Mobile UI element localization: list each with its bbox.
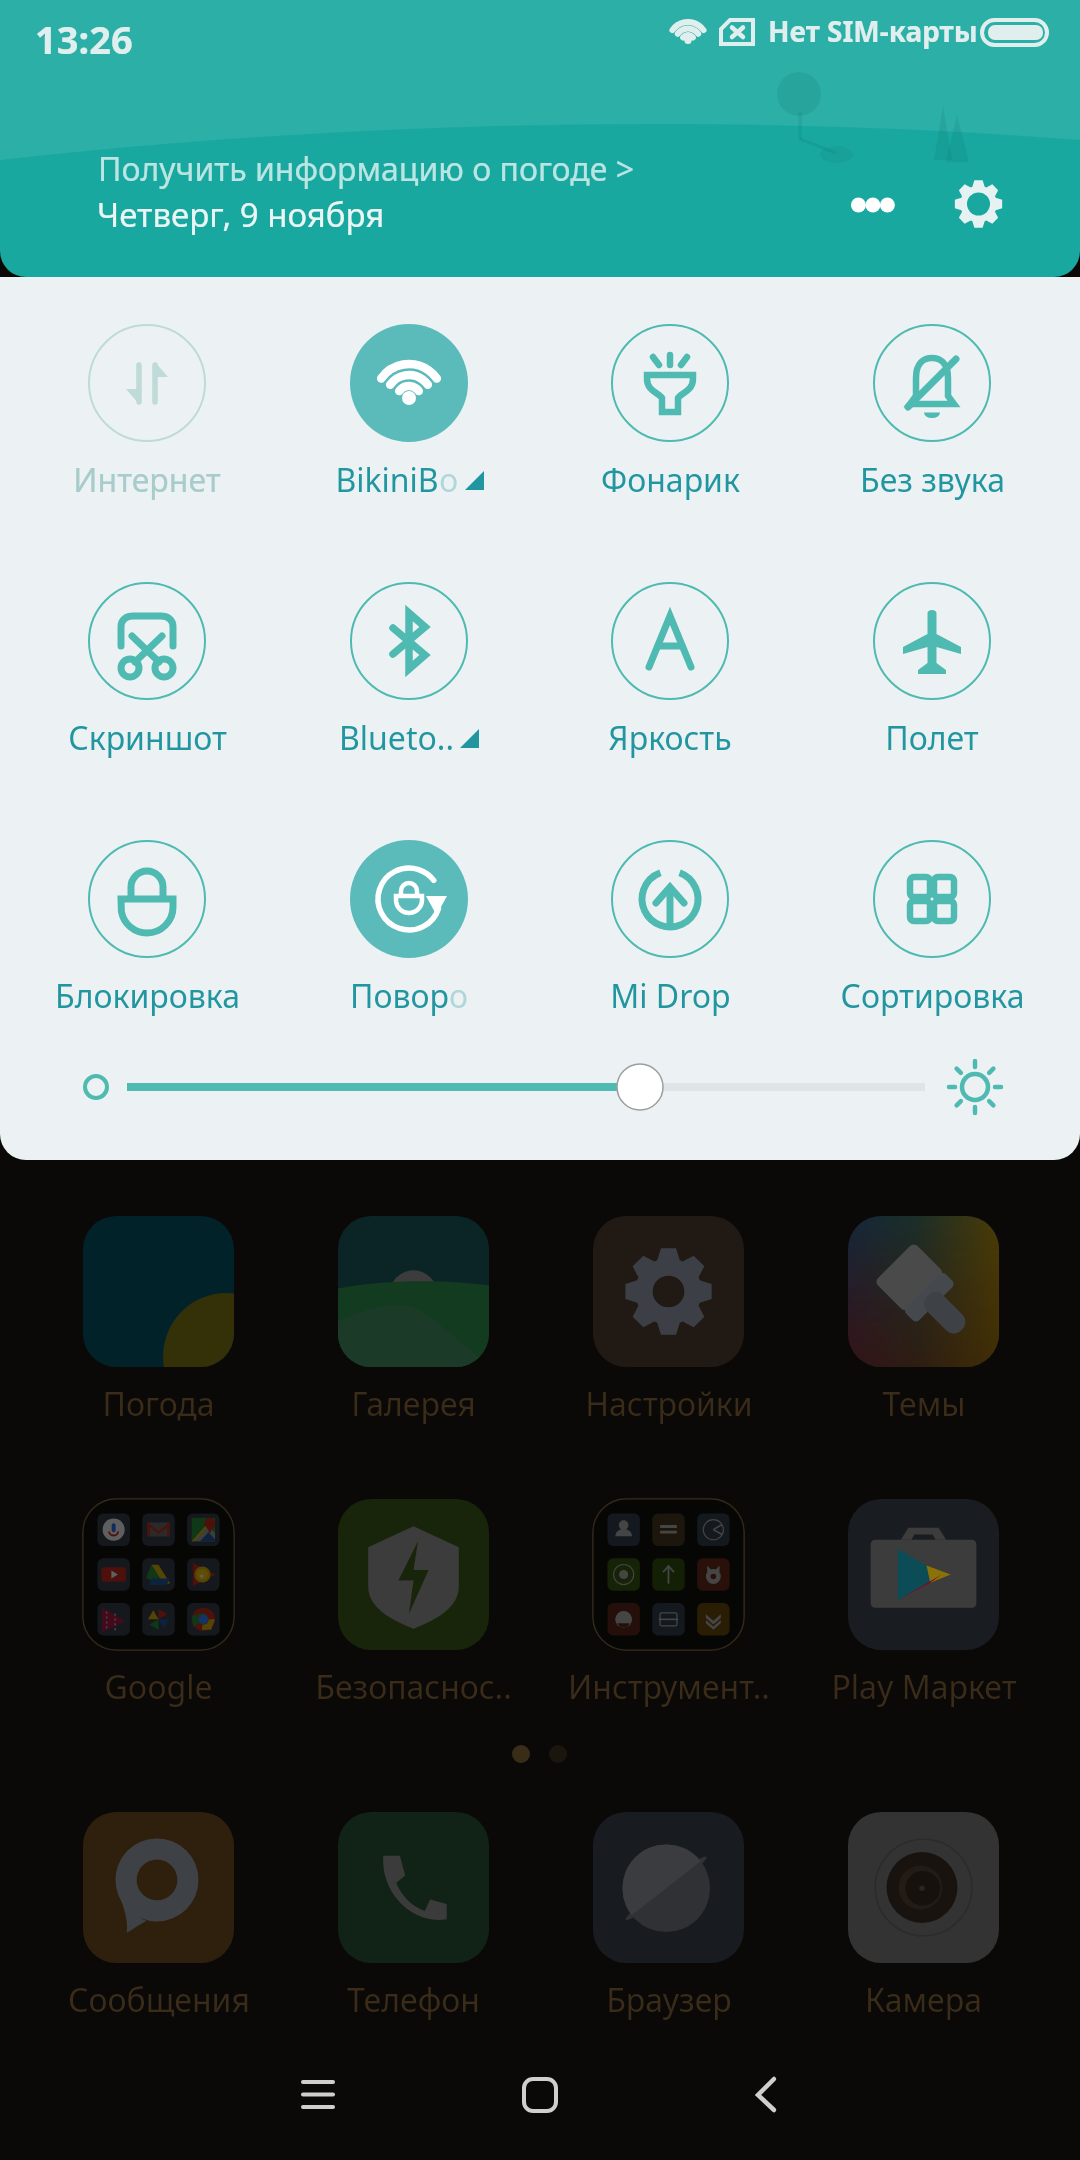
button[interactable]: Blueto..: [299, 582, 519, 760]
staticText: Сортировка: [840, 974, 1025, 1018]
button[interactable]: Сортировка: [822, 840, 1042, 1018]
button[interactable]: Recents: [278, 2052, 358, 2132]
staticText: BikiniB: [335, 458, 439, 502]
staticText: Полет: [885, 716, 979, 760]
button[interactable]: Яркость: [560, 582, 780, 760]
button[interactable]: Погода: [43, 1216, 274, 1426]
staticText: o: [439, 458, 459, 502]
button[interactable]: Безопаснос..: [298, 1499, 529, 1709]
button[interactable]: Браузер: [553, 1812, 784, 2022]
button[interactable]: Блокировка: [37, 840, 257, 1018]
button[interactable]: Инструмент..: [553, 1499, 784, 1709]
button[interactable]: Home: [500, 2052, 580, 2132]
button[interactable]: Повор: [299, 840, 519, 1018]
button[interactable]: Получить информацию о погоде >: [98, 147, 634, 191]
button[interactable]: Google: [43, 1499, 274, 1709]
staticText: Фонарик: [601, 458, 740, 502]
button[interactable]: Скриншот: [37, 582, 257, 760]
staticText: Темы: [882, 1382, 966, 1426]
button[interactable]: Настройки: [553, 1216, 784, 1426]
staticText: Безопаснос..: [315, 1665, 512, 1709]
staticText: Нет SIM-карты: [768, 12, 978, 50]
staticText: Blueto..: [339, 716, 454, 760]
button[interactable]: Интернет: [37, 324, 257, 502]
staticText: 13:26: [35, 13, 133, 65]
staticText: Камера: [865, 1978, 982, 2022]
staticText: Блокировка: [55, 974, 240, 1018]
staticText: Телефон: [347, 1978, 480, 2022]
button[interactable]: Темы: [808, 1216, 1039, 1426]
staticText: Play Маркет: [831, 1665, 1017, 1709]
staticText: Сообщения: [68, 1978, 250, 2022]
button[interactable]: Settings: [938, 163, 1020, 245]
staticText: Четверг, 9 ноября: [97, 192, 385, 237]
button[interactable]: Back: [728, 2052, 808, 2132]
button[interactable]: Камера: [808, 1812, 1039, 2022]
button[interactable]: Фонарик: [560, 324, 780, 502]
staticText: Яркость: [608, 716, 732, 760]
staticText: Галерея: [351, 1382, 476, 1426]
staticText: Браузер: [606, 1978, 732, 2022]
button[interactable]: Сообщения: [43, 1812, 274, 2022]
staticText: Mi Drop: [610, 974, 731, 1018]
button[interactable]: Без звука: [822, 324, 1042, 502]
staticText: о: [449, 974, 469, 1018]
button[interactable]: Галерея: [298, 1216, 529, 1426]
staticText: Без звука: [860, 458, 1005, 502]
staticText: Повор: [350, 974, 449, 1018]
button[interactable]: Play Маркет: [808, 1499, 1039, 1709]
button[interactable]: [0, 1022, 1080, 1152]
button[interactable]: BikiniB: [299, 324, 519, 502]
button[interactable]: More options: [832, 164, 912, 244]
staticText: Погода: [102, 1382, 215, 1426]
staticText: Настройки: [585, 1382, 753, 1426]
staticText: Google: [104, 1665, 213, 1709]
button[interactable]: Mi Drop: [560, 840, 780, 1018]
staticText: Инструмент..: [568, 1665, 770, 1709]
button[interactable]: Полет: [822, 582, 1042, 760]
staticText: Интернет: [73, 458, 221, 502]
staticText: Скриншот: [68, 716, 227, 760]
button[interactable]: Телефон: [298, 1812, 529, 2022]
